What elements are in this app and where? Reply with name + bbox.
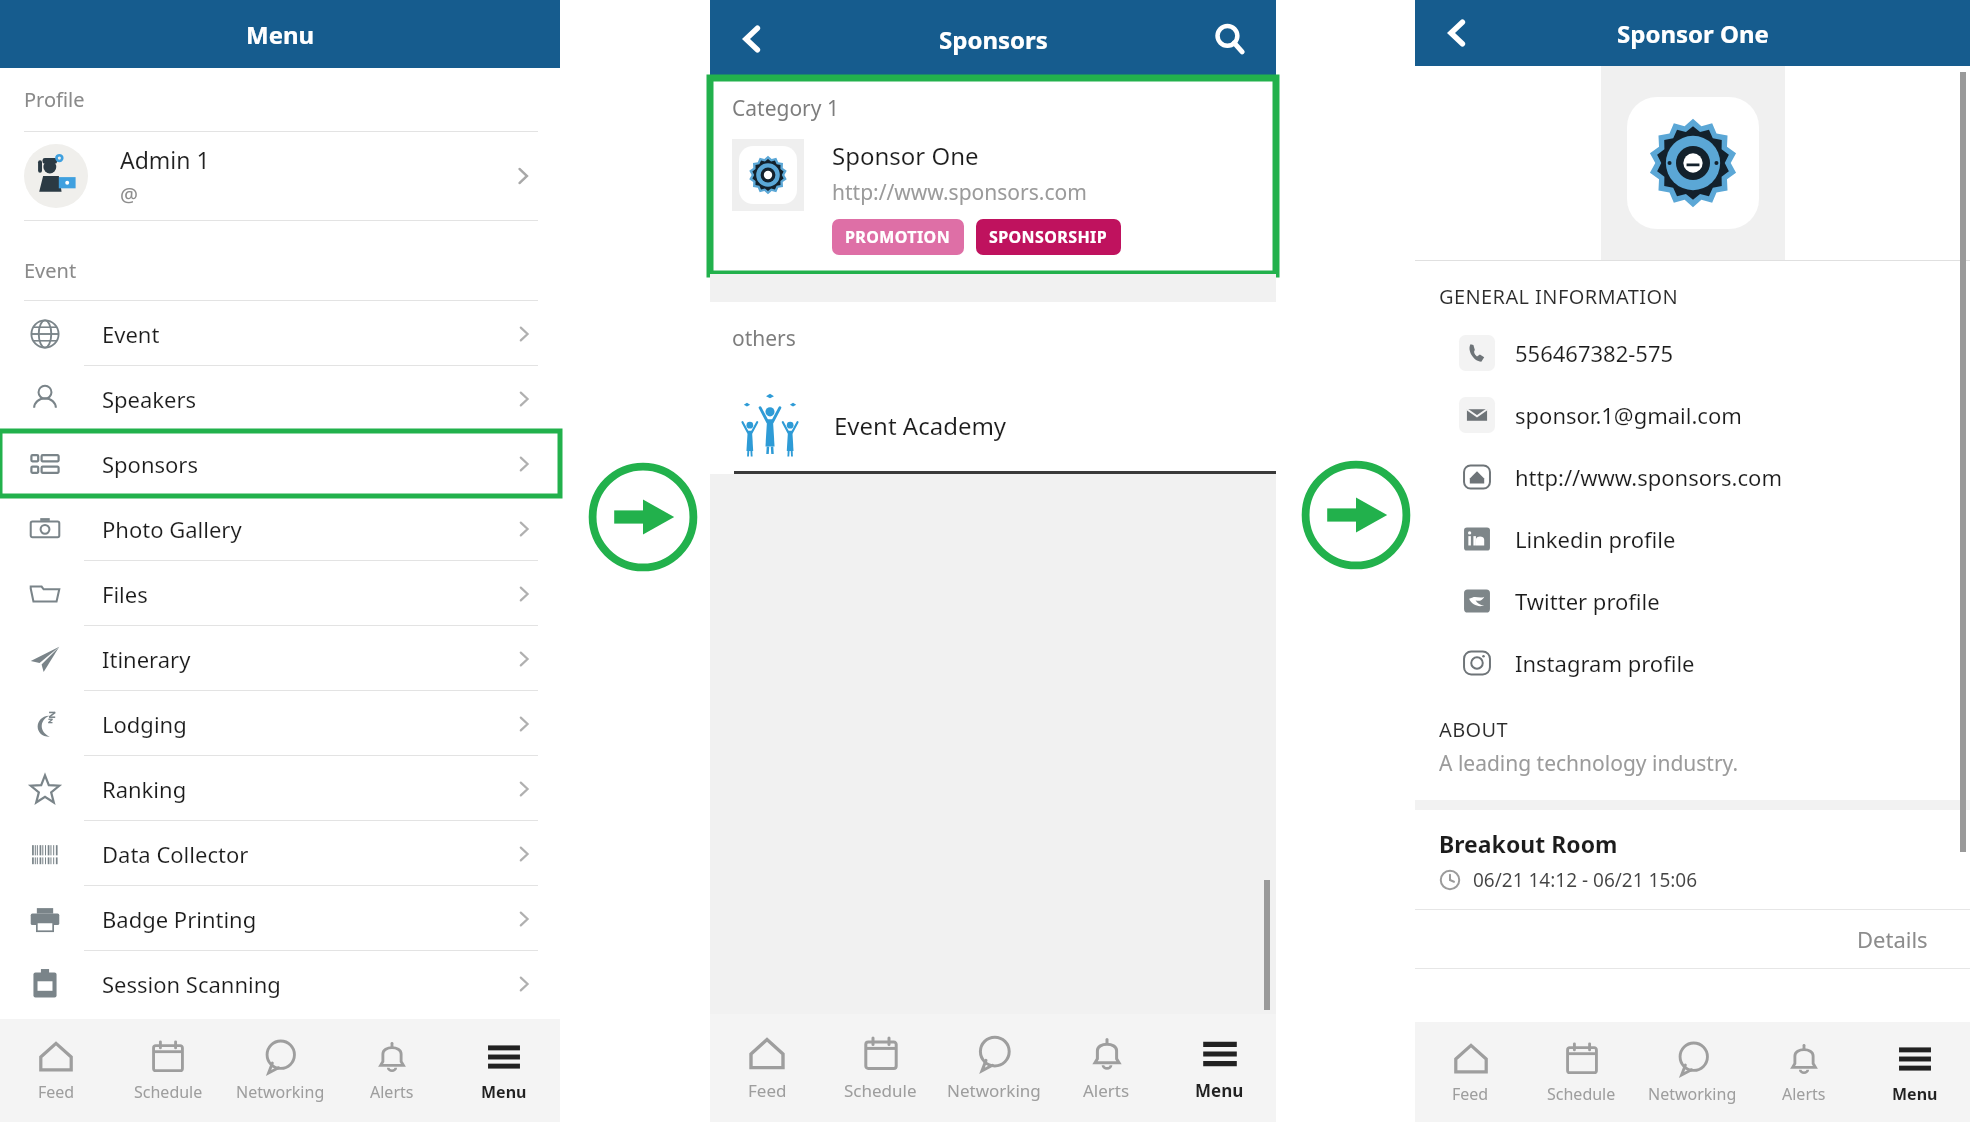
staticText: others (732, 324, 796, 353)
staticText: Menu (1195, 1079, 1244, 1102)
staticText: Networking (236, 1081, 325, 1103)
staticText: Instagram profile (1515, 648, 1695, 678)
button[interactable]: Details (1415, 910, 1970, 968)
staticText: http://www.sponsors.com (1515, 462, 1782, 492)
staticText: Sponsors (102, 449, 198, 479)
button[interactable]: Ranking (0, 756, 560, 821)
button[interactable]: Menu (1859, 1022, 1970, 1122)
button[interactable]: Admin 1 (0, 132, 560, 220)
button[interactable]: SPONSORSHIP (976, 219, 1121, 255)
staticText: Photo Gallery (102, 514, 242, 544)
button[interactable]: Event (0, 301, 560, 366)
staticText: Schedule (1547, 1083, 1616, 1105)
staticText: http://www.sponsors.com (832, 178, 1087, 207)
staticText: @ (120, 181, 138, 208)
staticText: Sponsor One (832, 139, 979, 172)
staticText: Alerts (1782, 1083, 1826, 1105)
button[interactable]: Speakers (0, 366, 560, 431)
staticText: Session Scanning (102, 969, 281, 999)
staticText: ABOUT (1439, 716, 1509, 743)
button[interactable]: Files (0, 561, 560, 626)
button[interactable]: Alerts (336, 1019, 448, 1122)
button[interactable]: Feed (1415, 1022, 1526, 1122)
staticText: Alerts (1083, 1079, 1130, 1102)
staticText: Event (102, 319, 160, 349)
staticText: Category 1 (732, 94, 839, 123)
staticText: Data Collector (102, 839, 249, 869)
staticText: Networking (947, 1079, 1041, 1102)
button[interactable]: Sponsor One (710, 139, 1276, 255)
button[interactable]: Schedule (1526, 1022, 1637, 1122)
staticText: GENERAL INFORMATION (1439, 283, 1679, 310)
staticText: Itinerary (102, 644, 191, 674)
button[interactable]: Menu (1163, 1014, 1276, 1122)
staticText: Twitter profile (1515, 586, 1660, 616)
staticText: Networking (1648, 1083, 1737, 1105)
staticText: Feed (1452, 1083, 1489, 1105)
staticText: Admin 1 (120, 144, 210, 175)
button[interactable]: Feed (710, 1014, 824, 1122)
staticText: PROMOTION (845, 226, 951, 248)
button[interactable]: Feed (0, 1019, 112, 1122)
staticText: Files (102, 579, 148, 609)
button[interactable]: Back (724, 11, 780, 67)
button[interactable]: Networking (1637, 1022, 1748, 1122)
button[interactable]: http://www.sponsors.com (1415, 446, 1970, 508)
staticText: Feed (38, 1081, 75, 1103)
staticText: A leading technology industry. (1439, 749, 1739, 778)
button[interactable]: Session Scanning (0, 951, 560, 1016)
button[interactable]: Schedule (824, 1014, 937, 1122)
staticText: Event Academy (834, 409, 1007, 442)
button[interactable]: Itinerary (0, 626, 560, 691)
staticText: Event (24, 257, 77, 284)
staticText: 06/21 14:12 - 06/21 15:06 (1473, 867, 1698, 893)
staticText: Speakers (102, 384, 197, 414)
button[interactable]: Networking (937, 1014, 1050, 1122)
button[interactable]: Twitter profile (1415, 570, 1970, 632)
button[interactable]: Schedule (112, 1019, 224, 1122)
staticText: Menu (1892, 1083, 1938, 1105)
staticText: sponsor.1@gmail.com (1515, 400, 1742, 430)
button[interactable]: Badge Printing (0, 886, 560, 951)
staticText: Details (1857, 924, 1928, 954)
button[interactable]: Linkedin profile (1415, 508, 1970, 570)
staticText: Menu (246, 18, 315, 51)
button[interactable]: Lodging (0, 691, 560, 756)
button[interactable]: Sponsors (0, 431, 560, 496)
staticText: Sponsor One (1617, 17, 1769, 50)
staticText: Ranking (102, 774, 187, 804)
staticText: Alerts (370, 1081, 414, 1103)
staticText: Schedule (134, 1081, 203, 1103)
staticText: Profile (24, 86, 85, 113)
staticText: Lodging (102, 709, 187, 739)
button[interactable]: sponsor.1@gmail.com (1415, 384, 1970, 446)
button[interactable]: Instagram profile (1415, 632, 1970, 694)
button[interactable]: Alerts (1050, 1014, 1163, 1122)
staticText: Feed (748, 1079, 787, 1102)
staticText: Schedule (844, 1079, 917, 1102)
staticText: 556467382-575 (1515, 338, 1674, 368)
button[interactable]: Event Academy (710, 379, 1276, 471)
button[interactable]: 556467382-575 (1415, 322, 1970, 384)
button[interactable]: Photo Gallery (0, 496, 560, 561)
button[interactable]: Networking (224, 1019, 336, 1122)
staticText: Badge Printing (102, 904, 257, 934)
button[interactable]: Back (1429, 5, 1485, 61)
staticText: Sponsors (939, 23, 1048, 56)
button[interactable]: Data Collector (0, 821, 560, 886)
button[interactable]: Alerts (1748, 1022, 1859, 1122)
staticText: Breakout Room (1439, 828, 1618, 859)
button[interactable]: PROMOTION (832, 219, 964, 255)
staticText: Menu (481, 1081, 527, 1103)
staticText: SPONSORSHIP (989, 226, 1108, 248)
button[interactable]: Menu (448, 1019, 560, 1122)
staticText: Linkedin profile (1515, 524, 1676, 554)
button[interactable]: Search (1202, 11, 1258, 67)
